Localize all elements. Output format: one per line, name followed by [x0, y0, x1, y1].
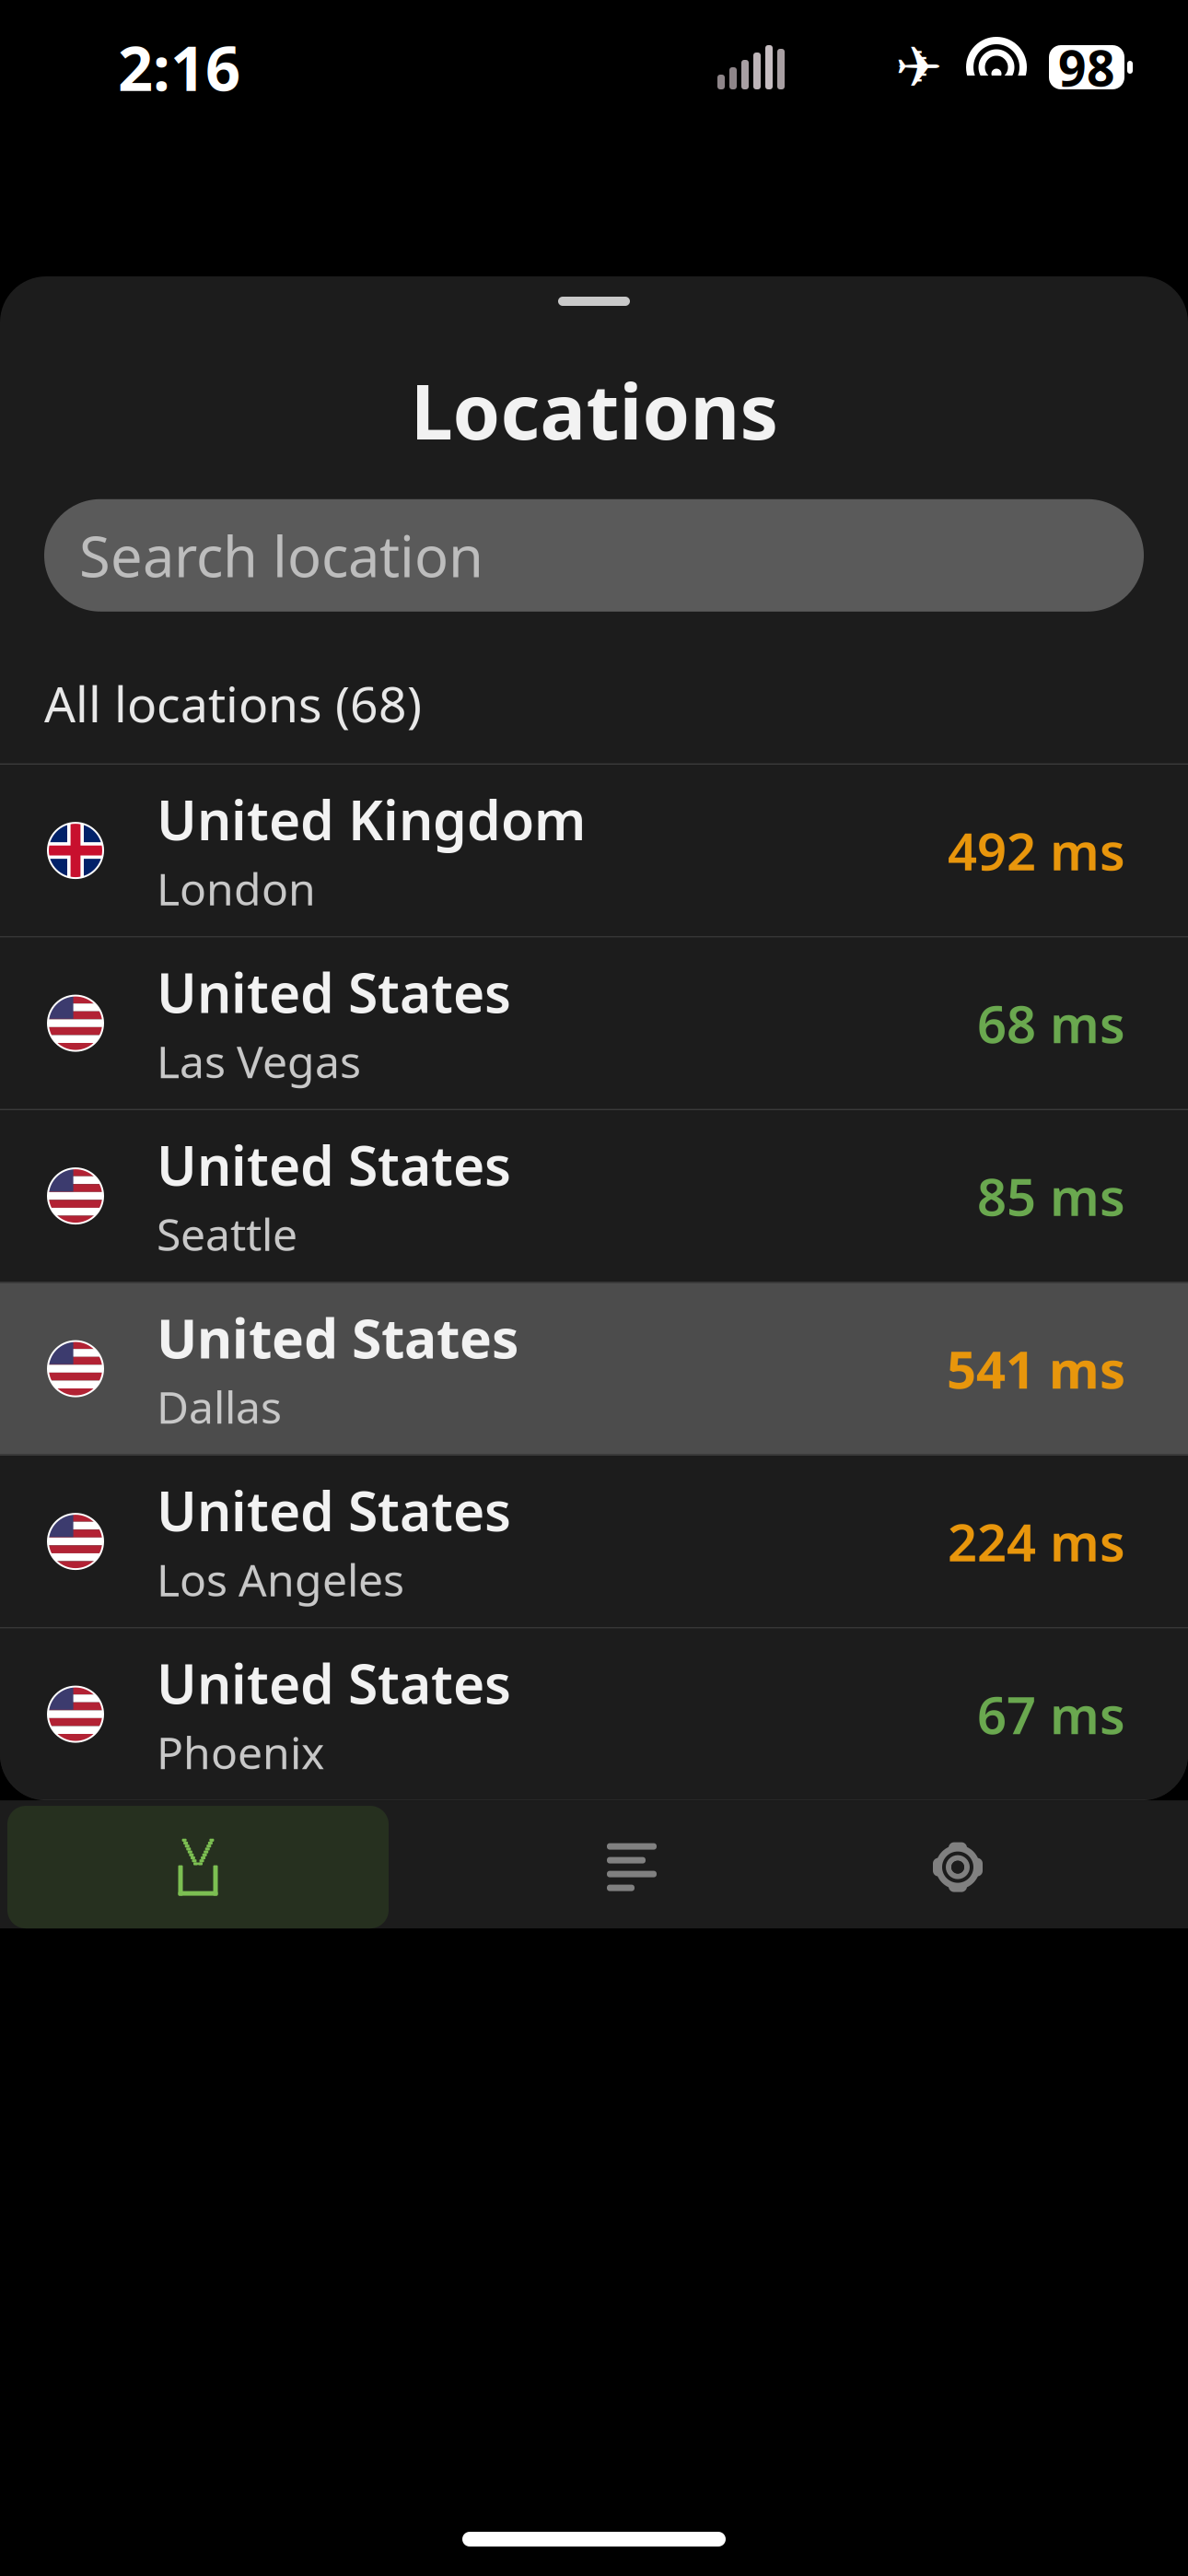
staticText: Dallas [157, 1377, 282, 1436]
button[interactable]: Home [7, 1806, 389, 1928]
staticText: 492 ms [948, 816, 1125, 885]
staticText: Las Vegas [157, 1032, 361, 1090]
staticText: United States [157, 1820, 511, 1892]
staticText: 89 ms [977, 1853, 1125, 1921]
staticText: 224 ms [948, 1507, 1125, 1576]
button[interactable]: United States [0, 1801, 1188, 1974]
staticText: Phoenix [157, 1723, 324, 1781]
staticText: ✈ [895, 35, 942, 99]
button[interactable]: United States [0, 1629, 1188, 1801]
staticText: 68 ms [977, 989, 1125, 1057]
staticText: United States [157, 1647, 511, 1719]
button[interactable]: Search location [0, 499, 1188, 612]
button[interactable]: Servers [549, 1806, 715, 1928]
button[interactable]: United Kingdom [0, 765, 1188, 938]
button[interactable]: United States [0, 1110, 1188, 1283]
staticText: 2:16 [118, 26, 240, 108]
staticText: London [157, 859, 316, 918]
staticText: United States [157, 1302, 518, 1373]
button[interactable]: United States [0, 938, 1188, 1110]
staticText: 67 ms [977, 1680, 1125, 1748]
staticText: Seattle [157, 1204, 297, 1263]
button[interactable]: United States [0, 1456, 1188, 1629]
staticText: 98 [1058, 35, 1115, 100]
staticText: 85 ms [977, 1162, 1125, 1230]
button[interactable]: United States [0, 1283, 1188, 1456]
staticText: Los Angeles [157, 1550, 404, 1609]
staticText: United States [157, 1129, 511, 1201]
staticText: Search location [79, 518, 483, 593]
staticText: Denver [157, 1895, 307, 1954]
staticText: United States [157, 1474, 511, 1546]
staticText: Locations [410, 359, 778, 460]
staticText: All locations (68) [44, 671, 422, 736]
staticText: 541 ms [947, 1334, 1125, 1403]
staticText: United States [157, 956, 511, 1028]
staticText: United Kingdom [157, 783, 586, 855]
button[interactable]: Settings [875, 1806, 1041, 1928]
